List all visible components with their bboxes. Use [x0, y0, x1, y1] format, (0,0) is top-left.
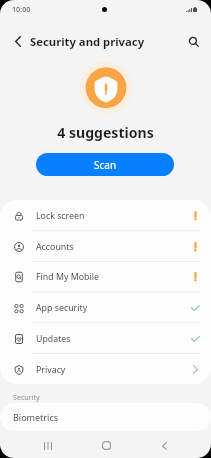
button[interactable]: Privacy [0, 354, 211, 384]
button[interactable]: Search [180, 28, 207, 55]
staticText: Privacy [36, 364, 66, 376]
staticText: Security and privacy [30, 34, 145, 49]
button[interactable]: Find My Mobile [0, 261, 211, 292]
button[interactable]: Accounts [0, 231, 211, 262]
staticText: Lock screen [36, 210, 85, 222]
staticText: Scan [94, 158, 117, 172]
button[interactable]: Lock screen [0, 200, 211, 231]
staticText: Find My Mobile [36, 271, 99, 283]
button[interactable]: Scan [36, 153, 174, 176]
button[interactable]: App security [0, 292, 211, 323]
staticText: Security [13, 392, 40, 402]
staticText: 10:00 [12, 4, 31, 14]
button[interactable]: Recent apps [18, 433, 77, 458]
staticText: Updates [36, 333, 71, 345]
button[interactable]: Home [77, 433, 135, 458]
staticText: App security [36, 302, 88, 314]
button[interactable]: Updates [0, 323, 211, 354]
button[interactable]: Back [135, 433, 193, 458]
staticText: Accounts [36, 241, 74, 253]
staticText: 4 suggestions [0, 123, 211, 142]
button[interactable]: Navigate up [4, 27, 32, 55]
staticText: Biometrics [13, 411, 59, 423]
button[interactable]: Biometrics [0, 403, 211, 431]
